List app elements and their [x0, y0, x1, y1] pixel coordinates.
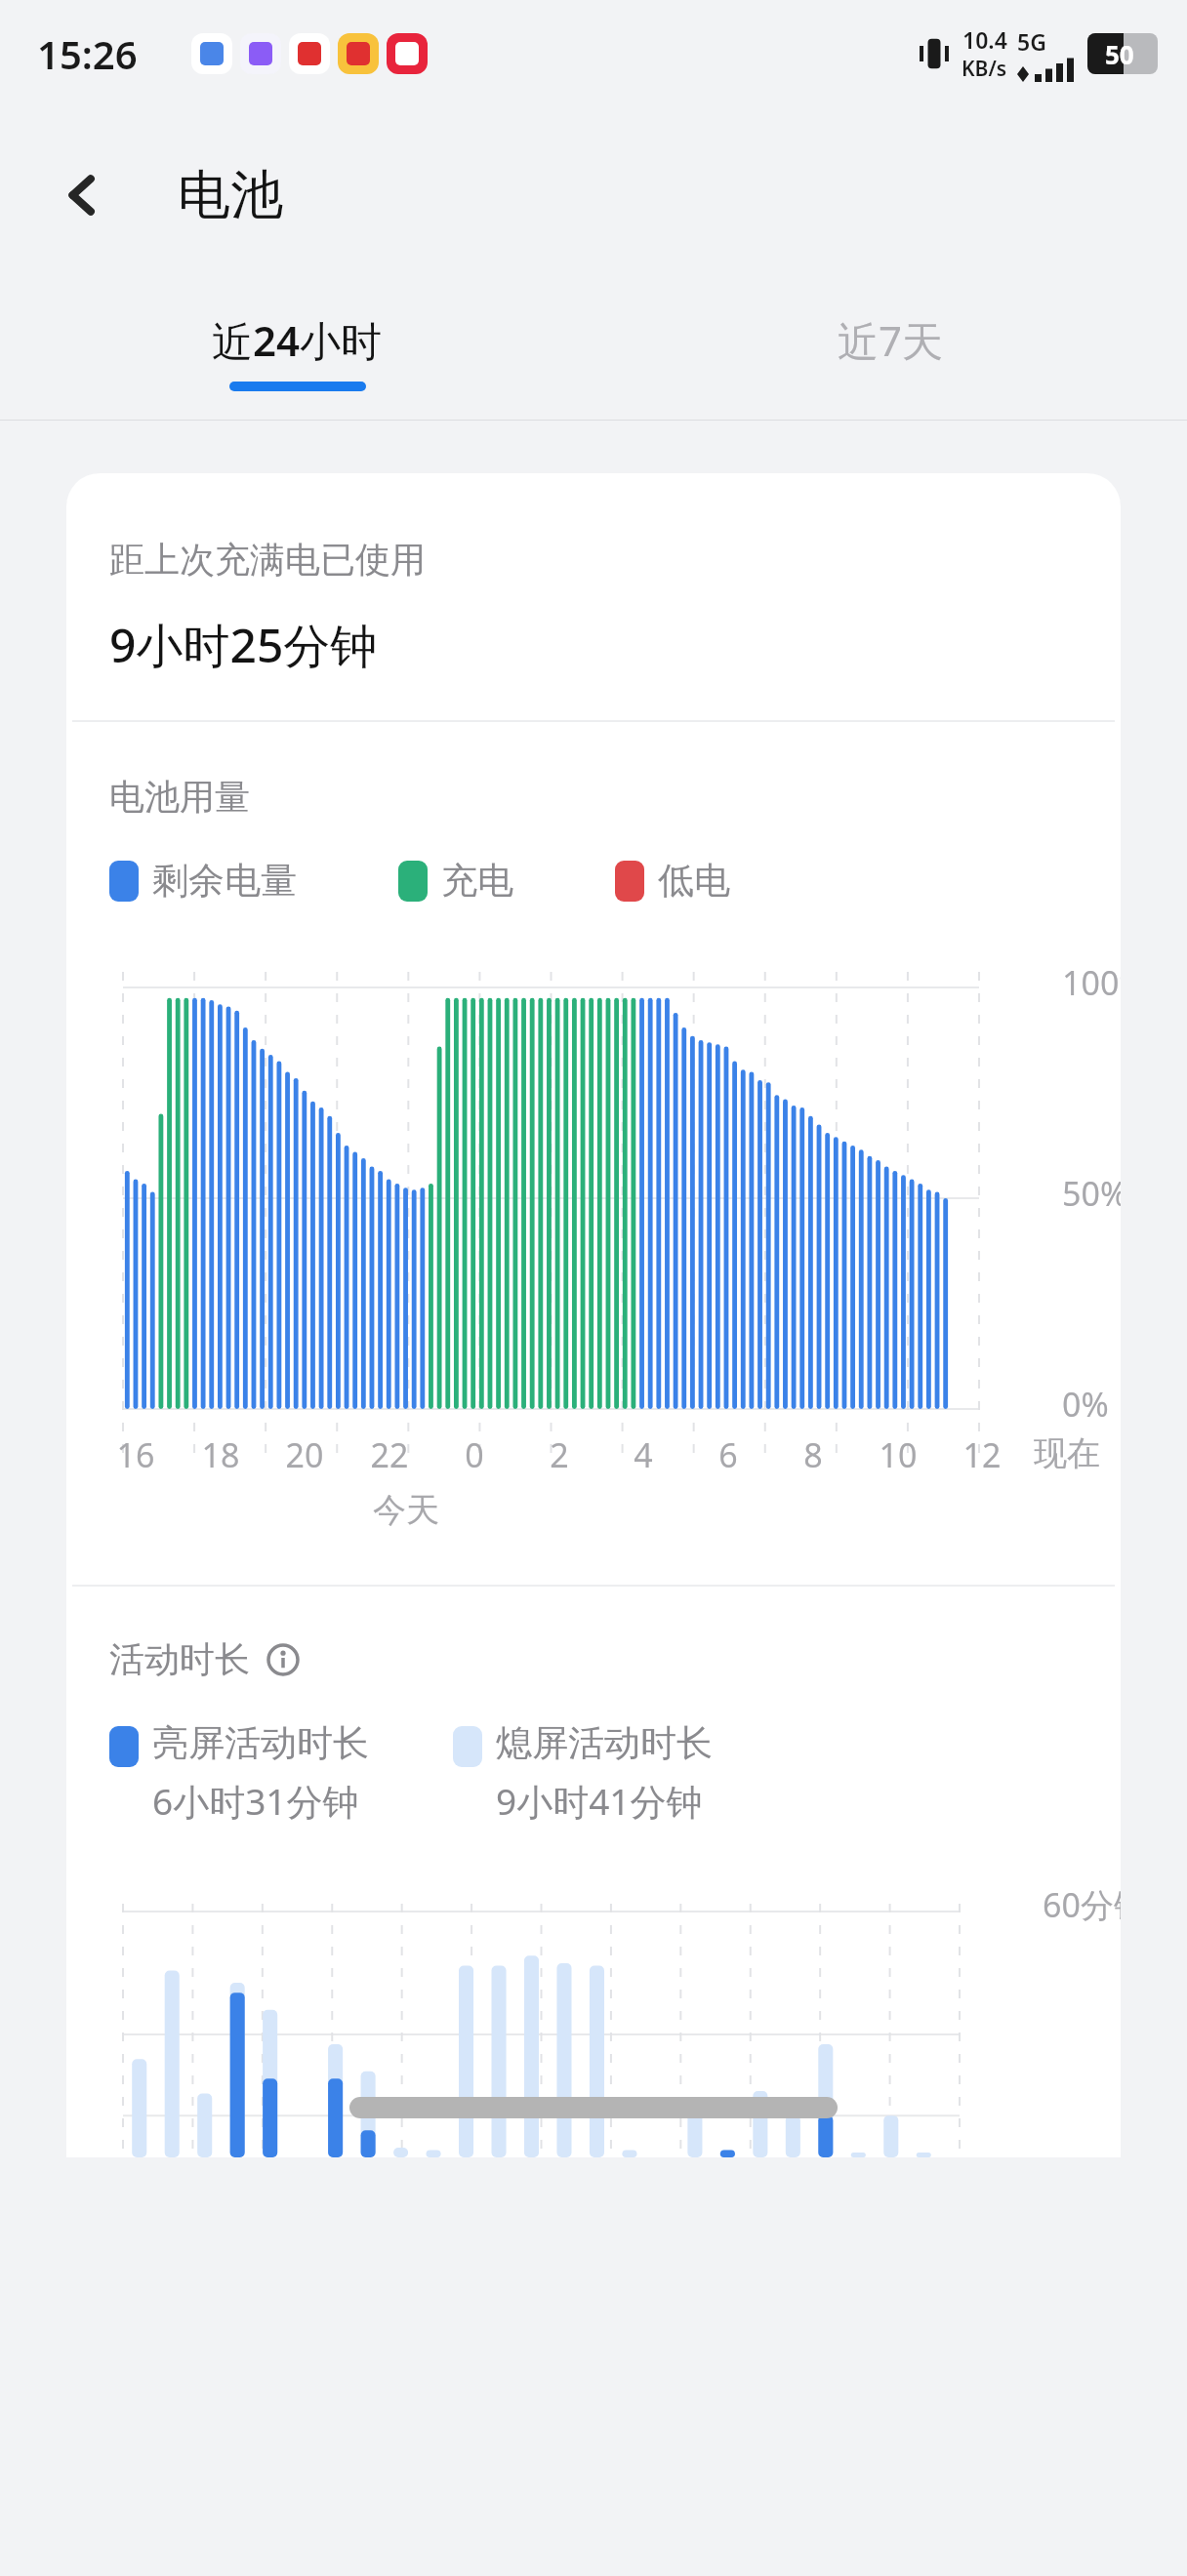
staticText: 近24小时 — [212, 312, 383, 368]
staticText: 2 — [525, 1432, 593, 1477]
staticText: 10 — [864, 1432, 932, 1477]
staticText: 剩余电量 — [152, 858, 297, 904]
staticText: 现在 — [1033, 1432, 1101, 1474]
staticText: 熄屏活动时长 — [496, 1720, 713, 1766]
staticText: 电池 — [178, 162, 283, 228]
staticText: 9小时25分钟 — [109, 613, 378, 677]
staticText: 15:26 — [37, 27, 138, 80]
staticText: 50 — [1105, 37, 1134, 71]
staticText: 充电 — [441, 858, 513, 904]
staticText: 0 — [440, 1432, 509, 1477]
staticText: 今天 — [373, 1489, 439, 1531]
staticText: 4 — [609, 1432, 677, 1477]
staticText: 60分钟 — [1043, 1882, 1121, 1927]
staticText: 6小时31分钟 — [152, 1776, 359, 1826]
staticText: 16 — [102, 1432, 170, 1477]
staticText: 近7天 — [838, 312, 944, 368]
staticText: 活动时长 — [109, 1637, 250, 1681]
staticText: 50% — [1062, 1171, 1121, 1216]
button[interactable]: 近24小时 — [0, 283, 593, 420]
staticText: 电池用量 — [109, 775, 250, 819]
button[interactable]: Info — [264, 1640, 303, 1679]
staticText: 亮屏活动时长 — [152, 1720, 369, 1766]
staticText: 18 — [186, 1432, 255, 1477]
staticText: 6 — [694, 1432, 762, 1477]
staticText: 10.4 — [962, 24, 1007, 55]
staticText: 距上次充满电已使用 — [109, 538, 426, 582]
staticText: 22 — [355, 1432, 424, 1477]
staticText: 低电 — [658, 858, 730, 904]
staticText: 0% — [1062, 1382, 1109, 1427]
staticText: KB/s — [962, 55, 1007, 83]
button[interactable]: Back — [39, 151, 127, 239]
staticText: 5G — [1017, 26, 1046, 57]
staticText: 9小时41分钟 — [496, 1776, 703, 1826]
staticText: 8 — [779, 1432, 847, 1477]
staticText: 12 — [948, 1432, 1016, 1477]
staticText: 20 — [270, 1432, 339, 1477]
staticText: 100% — [1062, 960, 1121, 1005]
button[interactable]: 近7天 — [593, 283, 1187, 420]
